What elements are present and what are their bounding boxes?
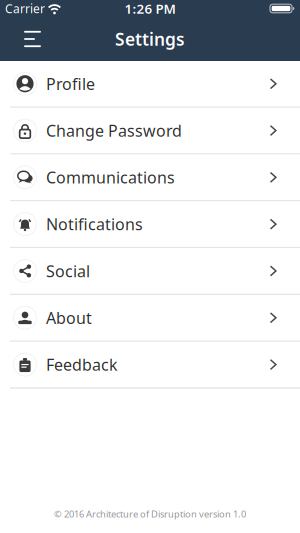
staticText: Profile — [46, 73, 95, 94]
staticText: Settings — [115, 27, 185, 50]
button[interactable]: Communications — [0, 155, 300, 201]
staticText: Change Password — [46, 120, 182, 141]
button[interactable]: Social — [0, 248, 300, 295]
button[interactable]: Feedback — [0, 342, 300, 389]
staticText: Feedback — [46, 354, 118, 375]
button[interactable]: About — [0, 295, 300, 342]
staticText: 1:26 PM — [124, 0, 175, 17]
button[interactable]: Profile — [0, 61, 300, 108]
staticText: About — [46, 307, 92, 328]
button[interactable]: Notifications — [0, 201, 300, 248]
button[interactable]: Menu — [0, 23, 41, 55]
staticText: © 2016 Architecture of Disruption versio… — [54, 508, 246, 520]
staticText: Communications — [46, 167, 175, 188]
staticText: Carrier — [5, 0, 45, 16]
staticText: Social — [46, 260, 90, 281]
button[interactable]: Change Password — [0, 108, 300, 155]
staticText: Notifications — [46, 213, 143, 235]
